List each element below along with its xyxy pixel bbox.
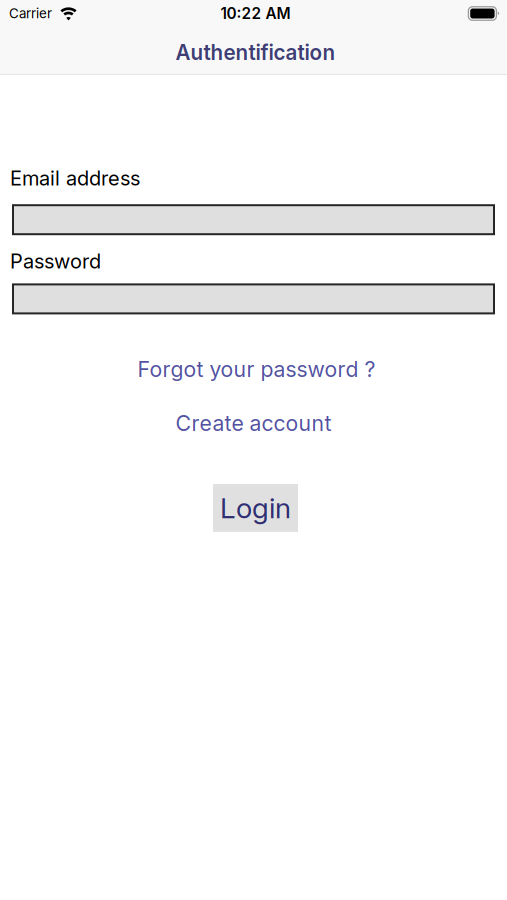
staticText: 10:22 AM (220, 4, 290, 23)
staticText: Login (220, 491, 291, 525)
button[interactable]: Create account (175, 410, 331, 436)
button[interactable]: Login (213, 484, 298, 532)
staticText: Create account (175, 410, 331, 436)
staticText: Forgot your password ? (137, 356, 375, 382)
staticText: Email address (10, 166, 140, 190)
staticText: Password (10, 249, 101, 273)
staticText: Carrier (9, 5, 52, 21)
button[interactable]: Forgot your password ? (137, 356, 375, 382)
button[interactable]: Password (0, 284, 507, 313)
staticText: Authentification (175, 40, 335, 65)
button[interactable]: Email address (0, 205, 507, 234)
